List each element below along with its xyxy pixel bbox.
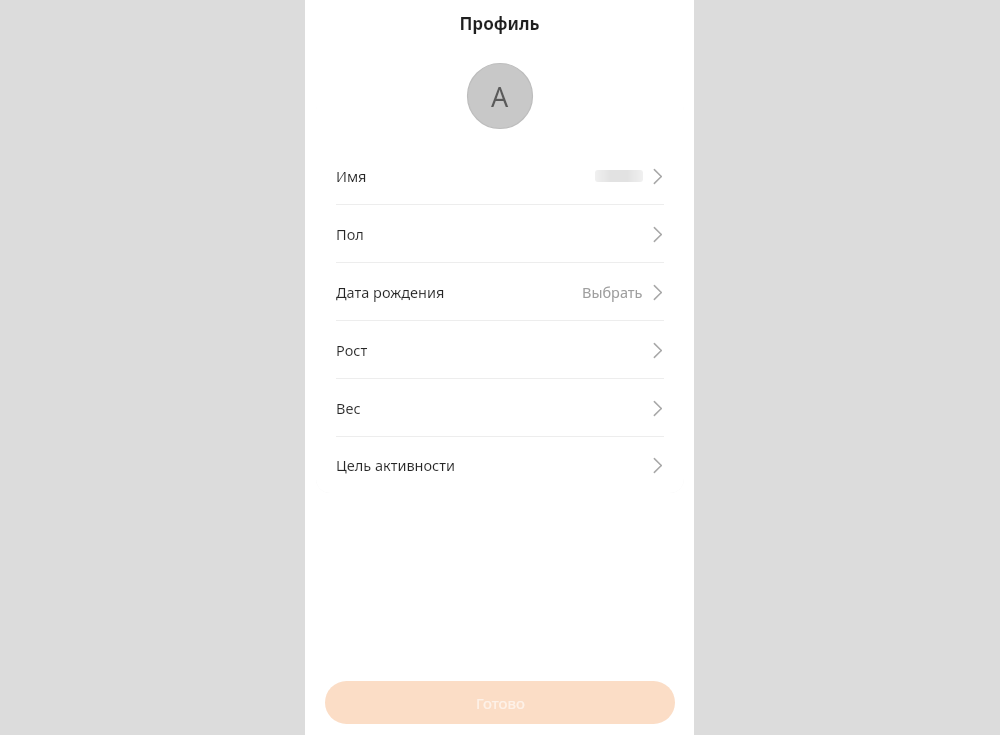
button[interactable]: Вес — [316, 379, 684, 436]
other: Открыть Пол — [650, 223, 664, 245]
staticText: Выбрать — [582, 282, 643, 302]
staticText: A — [491, 78, 509, 115]
button[interactable]: Имя — [316, 147, 684, 204]
other: Открыть Цель активности — [650, 454, 664, 476]
staticText: Готово — [476, 693, 525, 713]
staticText: Вес — [336, 398, 361, 418]
button[interactable]: Цель активности — [316, 437, 684, 493]
staticText: Пол — [336, 224, 364, 244]
staticText: Цель активности — [336, 455, 456, 475]
other: Открыть Рост — [650, 339, 664, 361]
staticText: Рост — [336, 340, 368, 360]
button[interactable]: Рост — [316, 321, 684, 378]
other: Открыть Имя — [650, 165, 664, 187]
staticText: Дата рождения — [336, 282, 445, 302]
staticText: Профиль — [459, 12, 540, 35]
other: Открыть Вес — [650, 397, 664, 419]
staticText: Имя — [336, 166, 367, 186]
other: Открыть Дата рождения — [650, 281, 664, 303]
button[interactable]: Дата рождения — [316, 263, 684, 320]
button[interactable]: Пол — [316, 205, 684, 262]
button[interactable]: Готово — [325, 681, 675, 724]
